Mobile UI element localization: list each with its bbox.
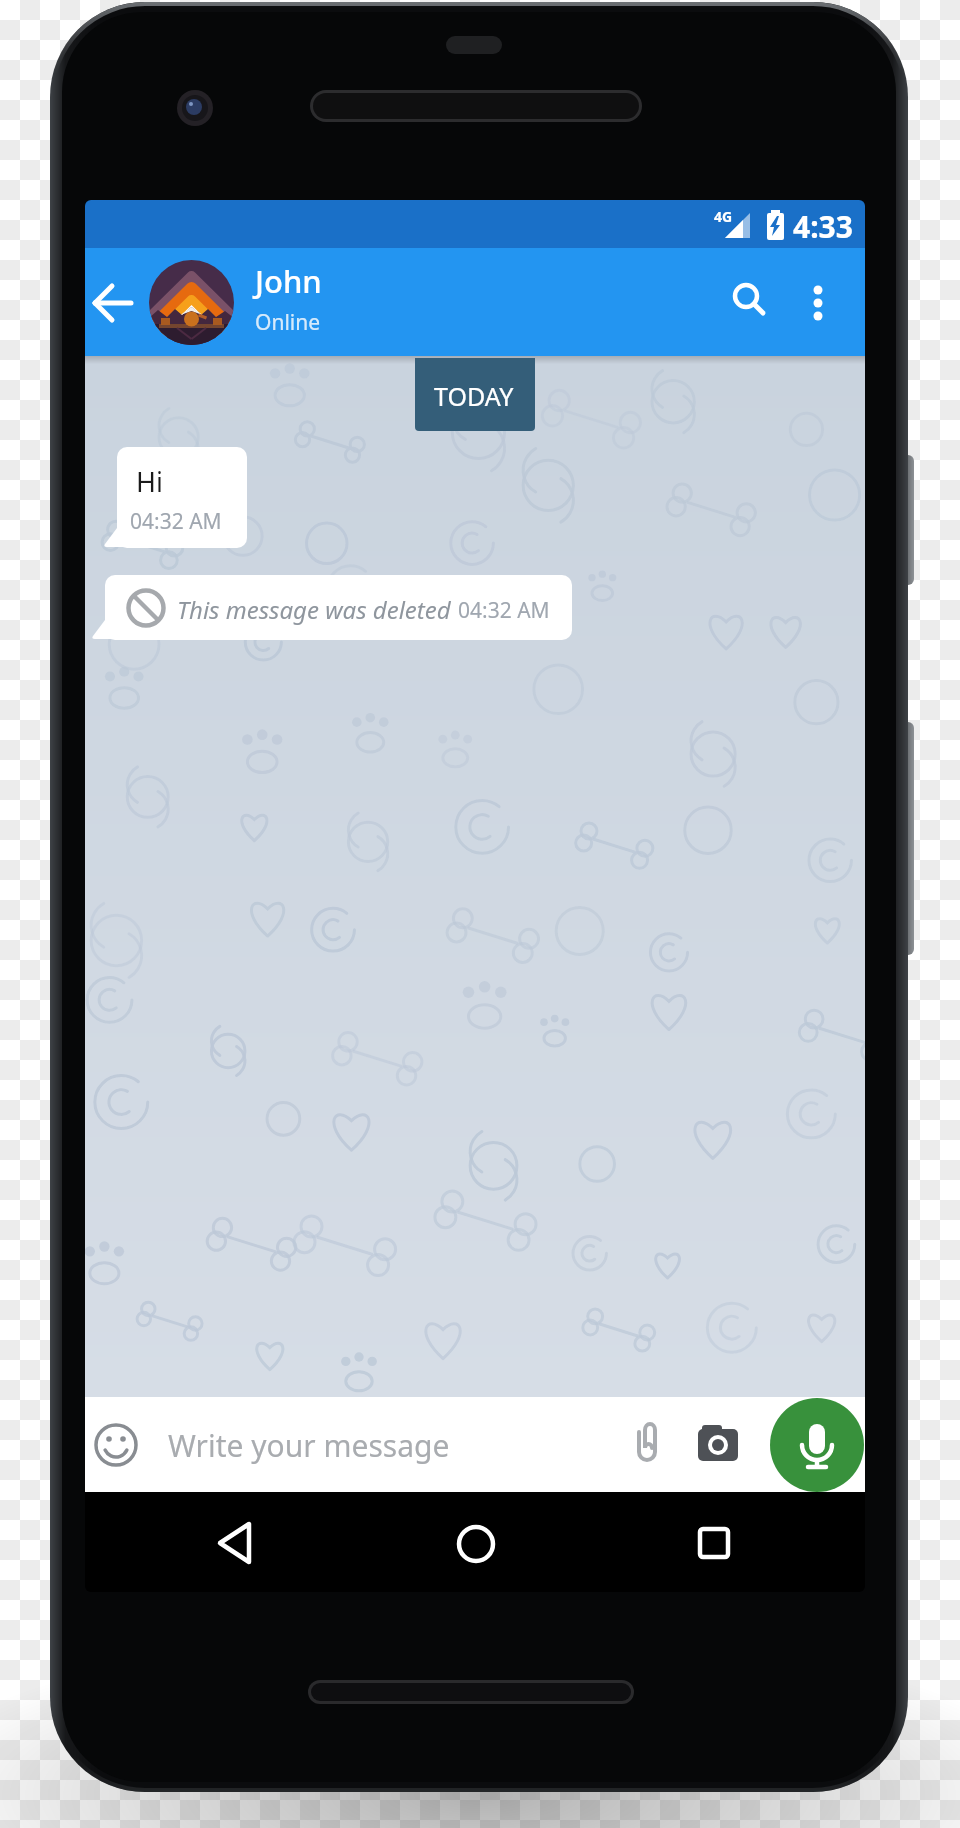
button[interactable]: This message was deleted: [105, 575, 572, 640]
button[interactable]: [213, 1519, 261, 1567]
staticText: John: [255, 260, 322, 302]
staticText: 4:33: [793, 206, 853, 247]
button[interactable]: [625, 1419, 671, 1465]
button[interactable]: [452, 1520, 500, 1568]
button[interactable]: [690, 1519, 738, 1567]
staticText: Online: [255, 308, 321, 337]
button[interactable]: [698, 1425, 742, 1465]
staticText: 04:32 AM: [130, 507, 222, 536]
button[interactable]: [89, 279, 137, 327]
button[interactable]: [93, 1422, 139, 1468]
button[interactable]: [770, 1398, 864, 1492]
staticText: TODAY: [434, 379, 514, 413]
button[interactable]: [725, 275, 773, 323]
staticText: This message was deleted: [177, 593, 451, 626]
button[interactable]: Hi: [117, 447, 247, 548]
staticText: 04:32 AM: [458, 596, 550, 625]
staticText: 4G: [714, 207, 733, 226]
button[interactable]: [149, 260, 234, 345]
button[interactable]: [798, 248, 838, 356]
button[interactable]: Write your message: [168, 1425, 450, 1466]
staticText: Hi: [136, 463, 163, 500]
